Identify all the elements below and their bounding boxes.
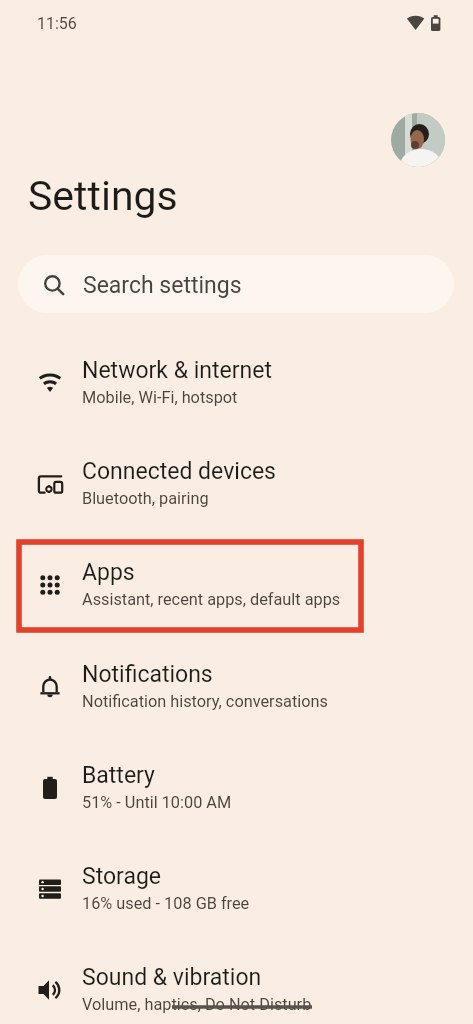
staticText: Apps <box>82 559 135 586</box>
staticText: 11:56 <box>37 14 77 33</box>
button[interactable]: Storage <box>0 839 473 940</box>
staticText: Search settings <box>83 272 242 299</box>
staticText: Sound & vibration <box>82 964 262 991</box>
button[interactable]: Search settings <box>18 255 454 313</box>
button[interactable]: Connected devices <box>0 434 473 535</box>
button[interactable]: Notifications <box>0 637 473 738</box>
staticText: 51% - Until 10:00 AM <box>82 793 232 812</box>
staticText: Network & internet <box>82 357 272 384</box>
staticText: Notifications <box>82 661 213 688</box>
staticText: 16% used - 108 GB free <box>82 894 250 913</box>
button[interactable]: Network & internet <box>0 333 473 434</box>
staticText: Storage <box>82 863 162 890</box>
staticText: Battery <box>82 762 155 789</box>
button[interactable]: Sound & vibration <box>0 940 473 1024</box>
staticText: Volume, haptics, Do Not Disturb <box>82 995 312 1014</box>
staticText: Assistant, recent apps, default apps <box>82 590 341 609</box>
button[interactable]: Battery <box>0 738 473 839</box>
button[interactable] <box>391 113 445 167</box>
staticText: Settings <box>28 172 178 220</box>
staticText: Notification history, conversations <box>82 692 328 711</box>
button[interactable]: Apps <box>0 535 473 636</box>
staticText: Mobile, Wi-Fi, hotspot <box>82 388 238 407</box>
staticText: Bluetooth, pairing <box>82 489 209 508</box>
staticText: Connected devices <box>82 458 276 485</box>
